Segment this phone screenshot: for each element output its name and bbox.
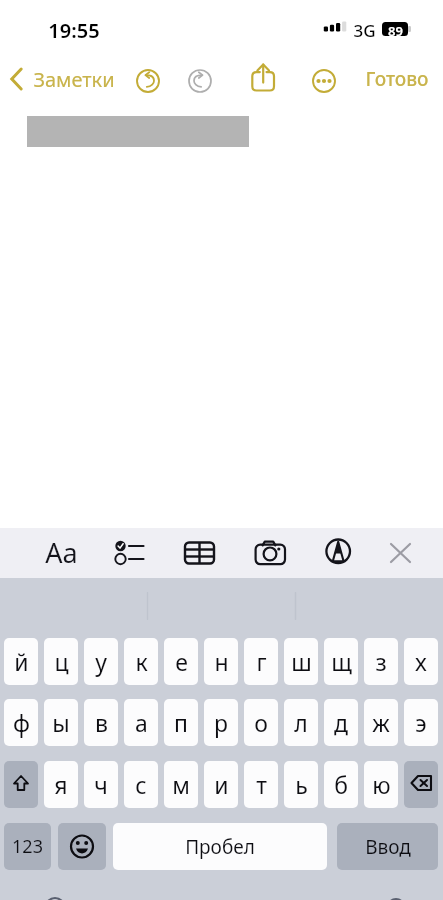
staticText: ж bbox=[372, 707, 390, 738]
staticText: л bbox=[294, 707, 308, 738]
button[interactable]: р bbox=[204, 699, 238, 746]
button[interactable]: ю bbox=[364, 761, 398, 808]
staticText: ч bbox=[94, 769, 108, 800]
button[interactable]: ш bbox=[284, 638, 318, 685]
staticText: 123 bbox=[12, 834, 43, 859]
button[interactable]: т bbox=[244, 761, 278, 808]
button[interactable]: Markup bbox=[318, 533, 358, 573]
staticText: г bbox=[256, 646, 267, 677]
button[interactable]: д bbox=[324, 699, 358, 746]
staticText: я bbox=[54, 769, 68, 800]
button[interactable]: Backspace bbox=[404, 761, 438, 808]
button[interactable]: к bbox=[124, 638, 158, 685]
button[interactable]: о bbox=[244, 699, 278, 746]
button[interactable]: ж bbox=[364, 699, 398, 746]
button[interactable]: Пробел bbox=[113, 823, 327, 870]
staticText: ц bbox=[54, 646, 69, 677]
button[interactable]: ч bbox=[84, 761, 118, 808]
button[interactable]: с bbox=[124, 761, 158, 808]
staticText: м bbox=[172, 769, 190, 800]
staticText: й bbox=[14, 646, 29, 677]
button[interactable]: ц bbox=[44, 638, 78, 685]
button[interactable]: Shift bbox=[4, 761, 38, 808]
staticText: з bbox=[375, 646, 387, 677]
button[interactable]: н bbox=[204, 638, 238, 685]
button[interactable]: л bbox=[284, 699, 318, 746]
button[interactable]: б bbox=[324, 761, 358, 808]
staticText: н bbox=[214, 646, 229, 677]
button[interactable]: я bbox=[44, 761, 78, 808]
staticText: х bbox=[415, 646, 427, 677]
button[interactable]: Undo bbox=[130, 63, 166, 99]
button[interactable]: Emoji bbox=[58, 823, 106, 870]
button[interactable]: й bbox=[4, 638, 38, 685]
button[interactable]: а bbox=[124, 699, 158, 746]
button[interactable]: м bbox=[164, 761, 198, 808]
staticText: у bbox=[95, 646, 107, 677]
button[interactable]: 123 bbox=[4, 823, 51, 870]
staticText: а bbox=[135, 707, 148, 738]
staticText: 3G bbox=[353, 19, 376, 42]
staticText: 19:55 bbox=[48, 17, 100, 44]
button[interactable]: Ввод bbox=[337, 823, 438, 870]
staticText: 89 bbox=[388, 22, 403, 36]
button[interactable]: Table bbox=[180, 533, 220, 573]
button[interactable]: Camera bbox=[250, 533, 290, 573]
staticText: Ввод bbox=[365, 834, 411, 860]
button[interactable]: Checklist bbox=[104, 533, 152, 573]
button[interactable]: е bbox=[164, 638, 198, 685]
button[interactable]: Заметки bbox=[2, 62, 114, 100]
button[interactable]: в bbox=[84, 699, 118, 746]
staticText: ш bbox=[291, 646, 312, 677]
staticText: е bbox=[175, 646, 188, 677]
button[interactable]: ь bbox=[284, 761, 318, 808]
button[interactable]: Aa bbox=[39, 532, 83, 572]
staticText: д bbox=[334, 707, 348, 738]
button[interactable]: у bbox=[84, 638, 118, 685]
staticText: Готово bbox=[365, 66, 429, 92]
button[interactable]: ы bbox=[44, 699, 78, 746]
staticText: ю bbox=[372, 769, 391, 800]
button[interactable]: Redo bbox=[182, 63, 218, 99]
staticText: Aa bbox=[45, 534, 78, 571]
staticText: в bbox=[95, 707, 108, 738]
button[interactable]: Close keyboard bbox=[381, 533, 419, 571]
staticText: с bbox=[135, 769, 147, 800]
staticText: и bbox=[214, 769, 229, 800]
staticText: Заметки bbox=[33, 66, 115, 93]
staticText: о bbox=[254, 707, 268, 738]
staticText: б bbox=[334, 769, 348, 800]
staticText: э bbox=[415, 707, 427, 738]
button[interactable]: Share bbox=[248, 60, 280, 98]
button[interactable]: More options bbox=[307, 64, 341, 98]
staticText: ы bbox=[52, 707, 70, 738]
staticText: Пробел bbox=[185, 834, 255, 860]
staticText: ф bbox=[13, 707, 30, 738]
button[interactable]: Готово bbox=[355, 60, 438, 98]
staticText: щ bbox=[331, 646, 352, 677]
staticText: р bbox=[214, 707, 228, 738]
button[interactable]: х bbox=[404, 638, 438, 685]
staticText: ь bbox=[295, 769, 308, 800]
staticText: т bbox=[256, 769, 267, 800]
staticText: к bbox=[135, 646, 148, 677]
button[interactable]: ф bbox=[4, 699, 38, 746]
button[interactable]: щ bbox=[324, 638, 358, 685]
button[interactable]: п bbox=[164, 699, 198, 746]
button[interactable]: э bbox=[404, 699, 438, 746]
button[interactable]: г bbox=[244, 638, 278, 685]
button[interactable]: и bbox=[204, 761, 238, 808]
staticText: п bbox=[174, 707, 188, 738]
button[interactable]: з bbox=[364, 638, 398, 685]
